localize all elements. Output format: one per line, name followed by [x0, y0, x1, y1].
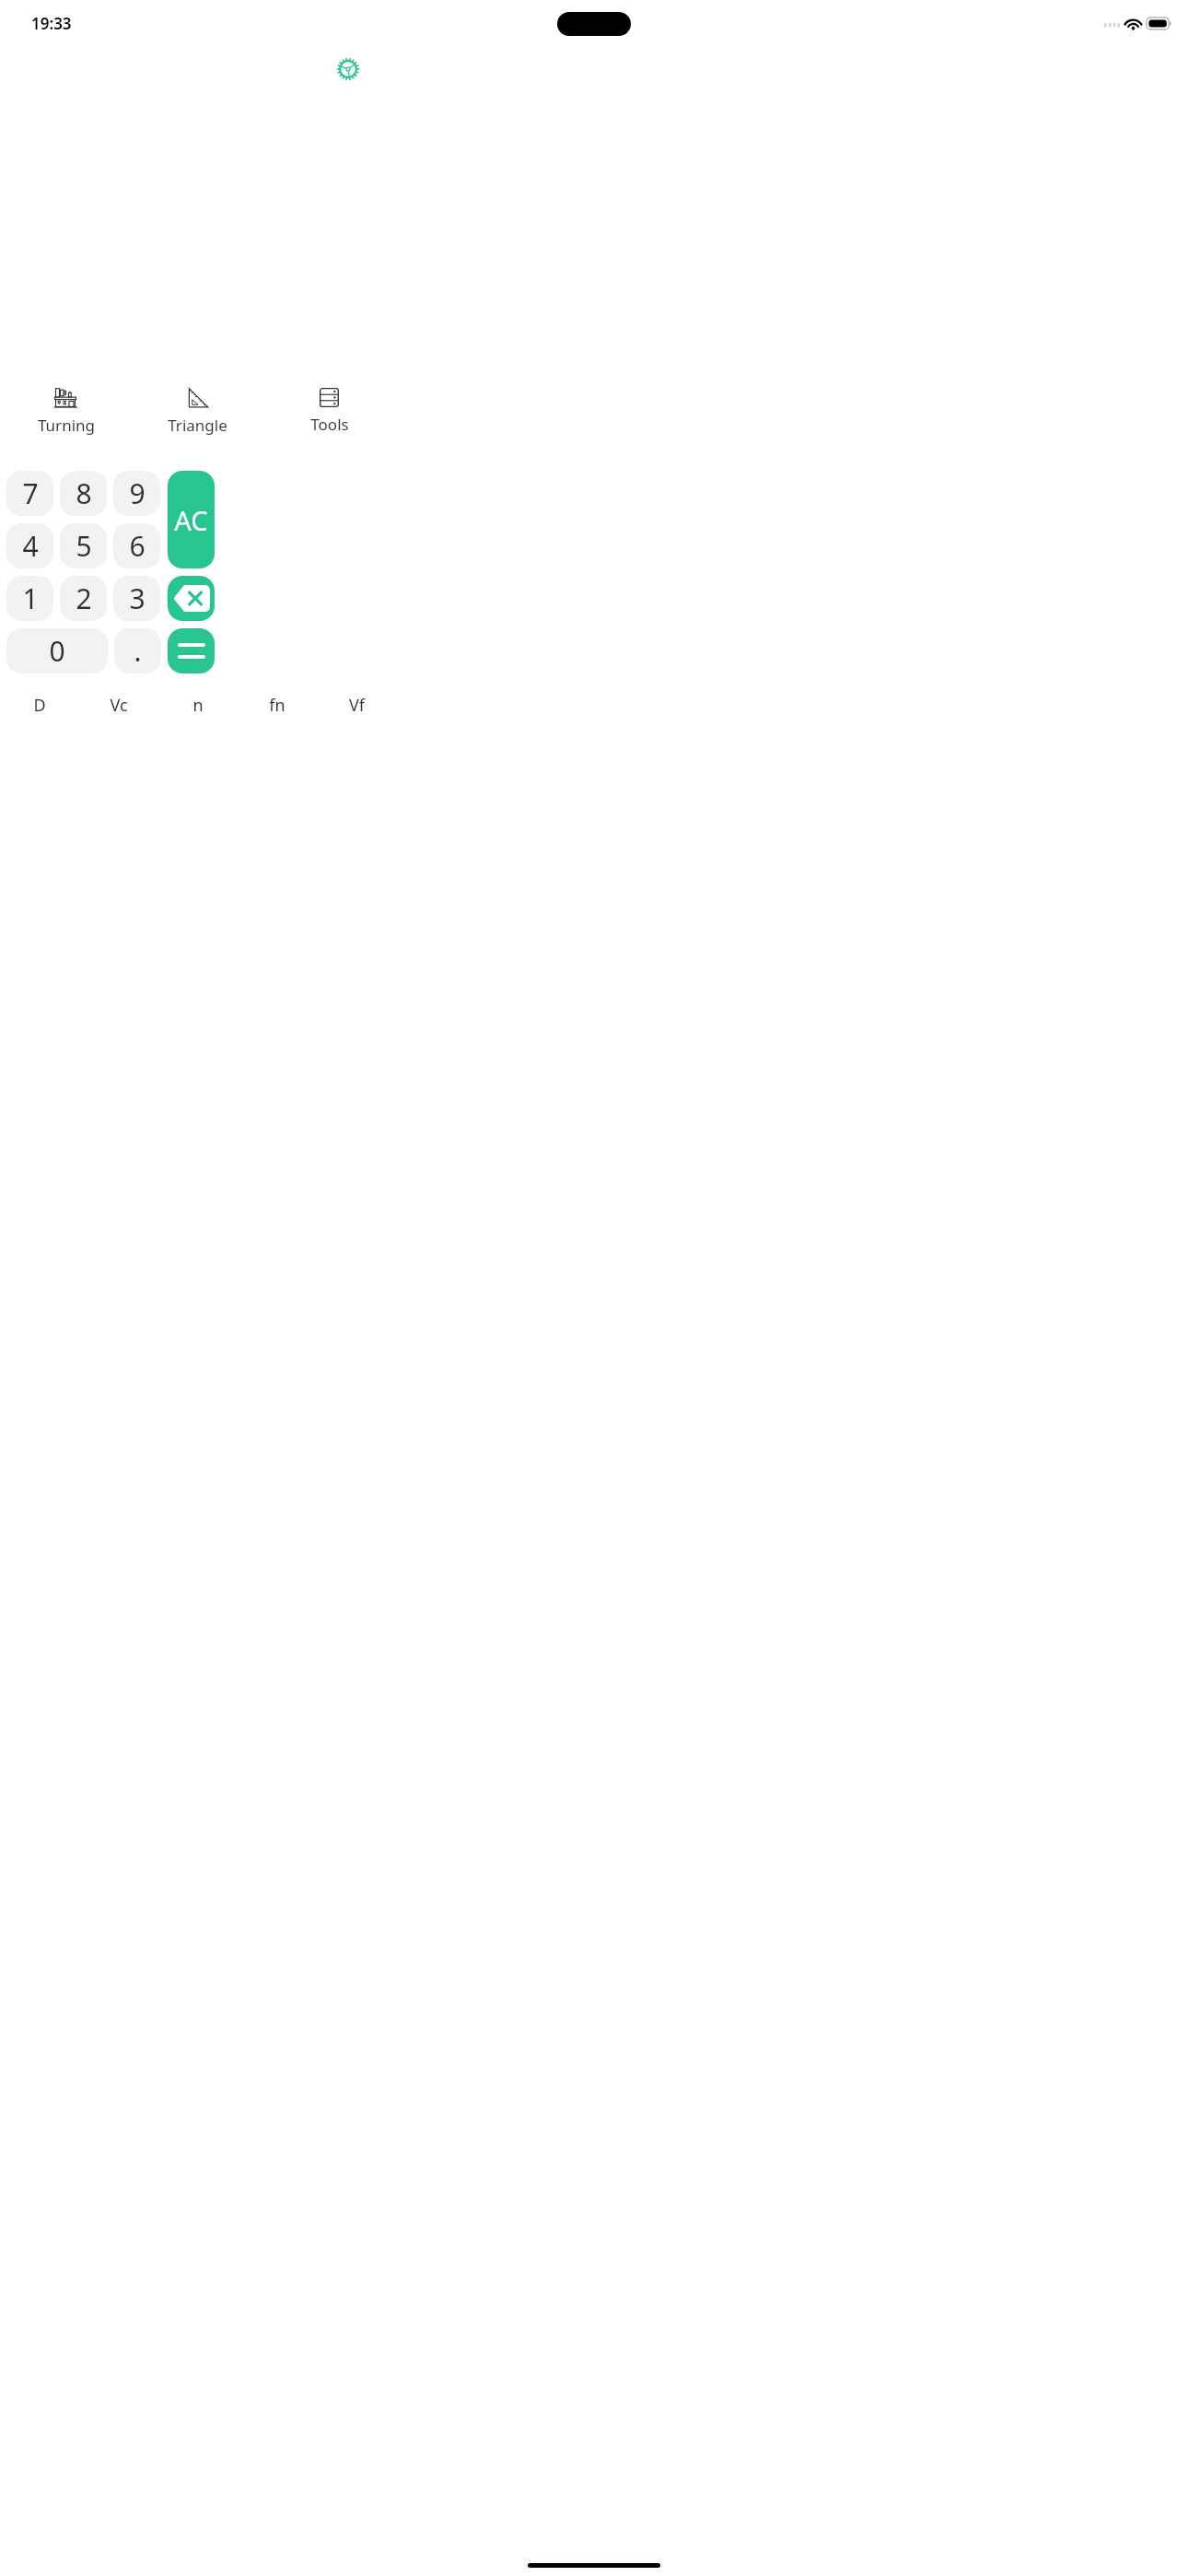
staticText: Vf	[349, 694, 365, 717]
button[interactable]: 7	[6, 471, 53, 516]
staticText: n	[192, 694, 204, 717]
staticText: Tools	[310, 414, 349, 435]
button[interactable]: Triangle	[132, 383, 263, 451]
button[interactable]: 5	[60, 523, 107, 568]
button[interactable]: 4	[6, 523, 53, 568]
button[interactable]: Equals	[168, 628, 215, 673]
staticText: Triangle	[168, 415, 227, 436]
staticText: 3	[129, 580, 146, 617]
staticText: 0	[49, 632, 65, 670]
staticText: 7	[22, 474, 39, 512]
button[interactable]: Settings	[332, 53, 364, 85]
staticText: 6	[129, 527, 146, 565]
button[interactable]: D	[0, 689, 79, 720]
button[interactable]: 0	[6, 628, 108, 673]
button[interactable]: .	[114, 628, 161, 673]
staticText: AC	[174, 502, 208, 538]
staticText: Turning	[38, 415, 95, 436]
button[interactable]: 9	[113, 471, 160, 516]
staticText: D	[33, 694, 46, 717]
staticText: 5	[76, 527, 92, 565]
staticText: 19:33	[31, 13, 72, 34]
button[interactable]: Tools	[263, 383, 395, 451]
button[interactable]: AC	[168, 471, 215, 568]
button[interactable]: Turning	[0, 383, 132, 451]
button[interactable]: Backspace	[168, 576, 215, 621]
staticText: 1	[22, 580, 39, 617]
staticText: .	[134, 632, 142, 670]
button[interactable]: 3	[113, 576, 160, 621]
staticText: 4	[22, 527, 39, 565]
button[interactable]: Vc	[79, 689, 158, 720]
staticText: 8	[76, 474, 92, 512]
button[interactable]: 1	[6, 576, 53, 621]
staticText: fn	[269, 694, 285, 717]
button[interactable]: n	[158, 689, 238, 720]
staticText: 9	[129, 474, 146, 512]
button[interactable]: 2	[60, 576, 107, 621]
button[interactable]: 6	[113, 523, 160, 568]
button[interactable]: 8	[60, 471, 107, 516]
button[interactable]: fn	[238, 689, 317, 720]
button[interactable]: Vf	[317, 689, 396, 720]
staticText: 2	[76, 580, 92, 617]
staticText: Vc	[110, 694, 128, 717]
